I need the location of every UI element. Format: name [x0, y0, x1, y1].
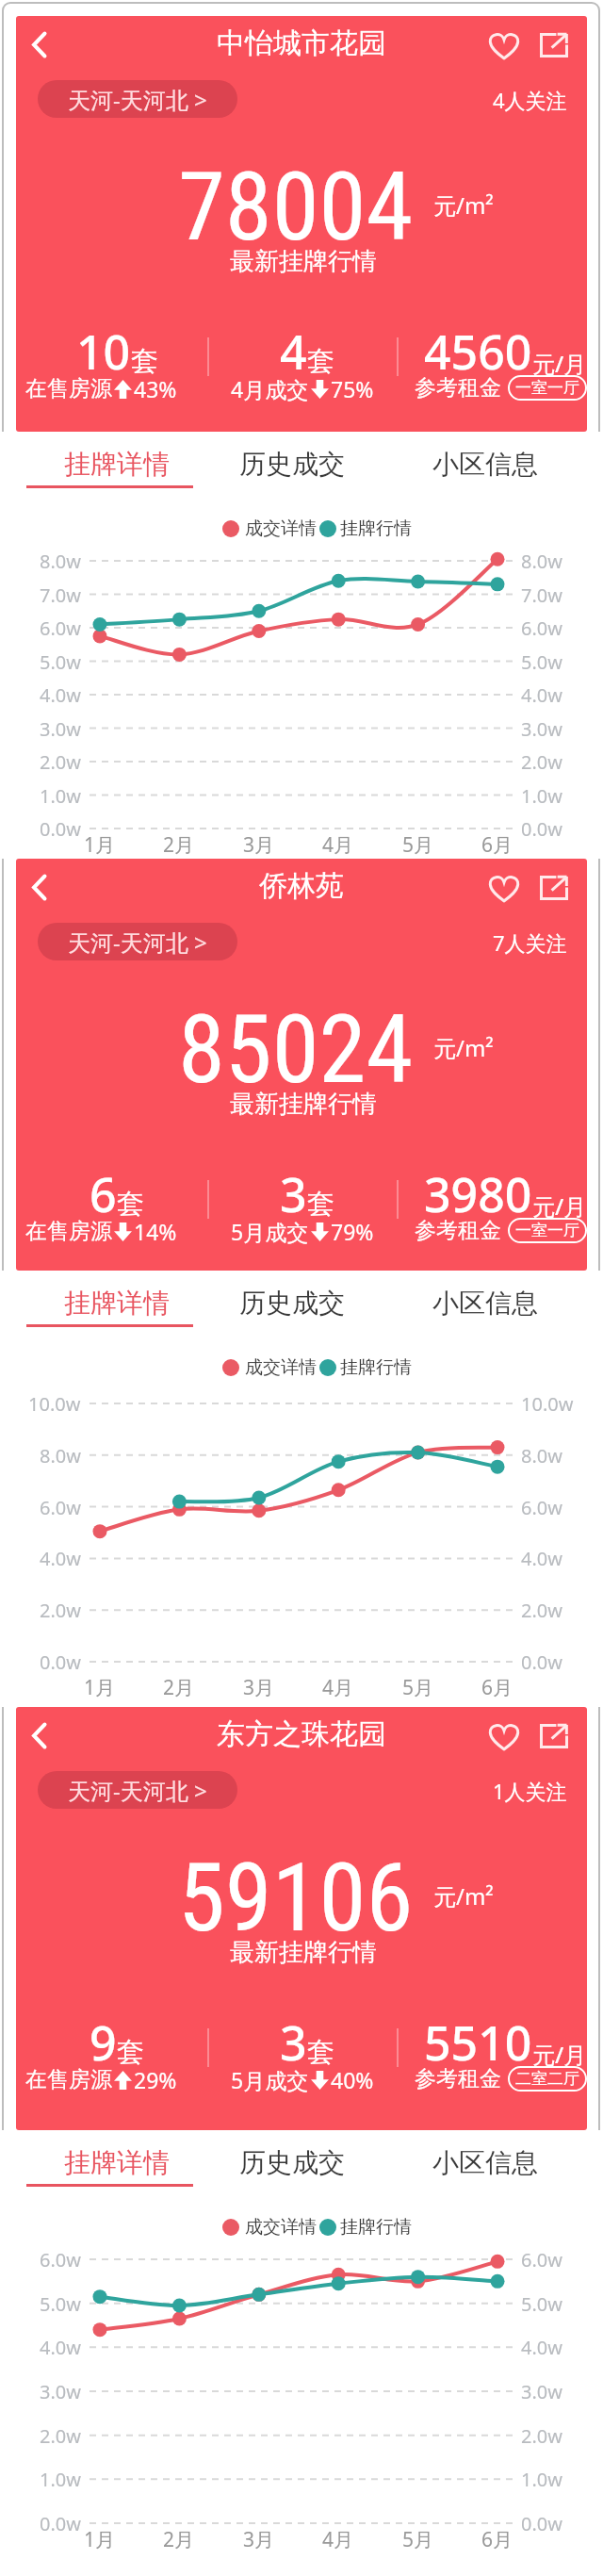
button[interactable]: 挂牌详情	[32, 1286, 202, 1320]
staticText: 2月	[163, 831, 195, 858]
staticText: 3月	[243, 2526, 275, 2552]
button[interactable]	[18, 1715, 59, 1756]
staticText: 4	[280, 320, 307, 384]
staticText: 1.0w	[521, 783, 562, 809]
staticText: 历史成交	[239, 2146, 345, 2179]
button[interactable]: 天河-天河北 >	[38, 80, 237, 118]
staticText: 4.0w	[40, 1546, 81, 1571]
staticText: 7.0w	[521, 582, 562, 608]
staticText: 套	[131, 344, 158, 379]
button[interactable]: 天河-天河北 >	[38, 1771, 237, 1809]
staticText: 7.0w	[40, 582, 81, 608]
staticText: 2月	[163, 2526, 195, 2552]
staticText: 3	[280, 1162, 307, 1226]
staticText: 7人关注	[493, 928, 567, 957]
staticText: 6	[90, 1162, 117, 1226]
staticText: 3.0w	[40, 2379, 81, 2404]
button[interactable]	[483, 25, 525, 66]
staticText: 6.0w	[521, 615, 562, 641]
staticText: 5510	[424, 2010, 532, 2075]
staticText: 小区信息	[432, 1287, 538, 1320]
staticText: 最新挂牌行情	[230, 1089, 377, 1120]
staticText: 元/m²	[433, 1880, 494, 1911]
staticText: 1月	[84, 1674, 116, 1700]
staticText: 套	[117, 2035, 144, 2070]
staticText: 一室一厅	[515, 378, 579, 398]
button[interactable]: 历史成交	[207, 2145, 377, 2179]
staticText: 1.0w	[40, 2467, 81, 2492]
staticText: 3月	[243, 1674, 275, 1700]
staticText: 29%	[134, 2065, 177, 2094]
staticText: 中怡城市花园	[217, 25, 386, 61]
button[interactable]	[18, 24, 59, 65]
staticText: 5月成交	[231, 2065, 309, 2094]
staticText: 0.0w	[521, 2511, 562, 2536]
staticText: 4560	[424, 320, 532, 384]
button[interactable]	[483, 1715, 525, 1757]
staticText: 成交详情	[245, 2216, 317, 2239]
staticText: 10	[76, 320, 131, 384]
staticText: 参考租金	[415, 374, 501, 402]
button[interactable]	[533, 1715, 575, 1757]
button[interactable]	[483, 867, 525, 909]
button[interactable]: 历史成交	[207, 1286, 377, 1320]
staticText: 3月	[243, 831, 275, 858]
staticText: 6月	[481, 2526, 513, 2552]
staticText: 历史成交	[239, 448, 345, 481]
staticText: 历史成交	[239, 1287, 345, 1320]
staticText: 0.0w	[40, 816, 81, 842]
staticText: 4月	[322, 831, 354, 858]
staticText: 5.0w	[40, 649, 81, 675]
staticText: 4人关注	[493, 86, 567, 114]
staticText: 4.0w	[521, 682, 562, 708]
staticText: 二室二厅	[515, 2069, 579, 2089]
staticText: 3980	[424, 1162, 532, 1226]
staticText: 1月	[84, 831, 116, 858]
staticText: 8.0w	[521, 549, 562, 574]
staticText: 小区信息	[432, 2146, 538, 2179]
staticText: 6.0w	[40, 2247, 81, 2272]
button[interactable]: 小区信息	[400, 447, 570, 481]
staticText: 4月成交	[231, 374, 309, 403]
staticText: 4.0w	[40, 2335, 81, 2360]
button[interactable]	[533, 867, 575, 909]
button[interactable]: 天河-天河北 >	[38, 923, 237, 960]
staticText: 天河-天河北 >	[68, 1775, 207, 1806]
staticText: 14%	[134, 1217, 177, 1246]
staticText: 挂牌详情	[64, 2146, 170, 2179]
staticText: 3.0w	[40, 716, 81, 742]
staticText: 2.0w	[521, 1598, 562, 1623]
staticText: 8.0w	[40, 549, 81, 574]
staticText: 成交详情	[245, 1356, 317, 1379]
button[interactable]: 小区信息	[400, 2145, 570, 2179]
staticText: 1人关注	[493, 1777, 567, 1805]
staticText: 元/m²	[433, 189, 494, 221]
staticText: 5月	[402, 1674, 434, 1700]
staticText: 侨林苑	[259, 868, 344, 904]
button[interactable]	[18, 866, 59, 908]
staticText: 最新挂牌行情	[230, 246, 377, 277]
staticText: 最新挂牌行情	[230, 1937, 377, 1968]
staticText: 4.0w	[521, 2335, 562, 2360]
staticText: 挂牌详情	[64, 1287, 170, 1320]
staticText: 元/月	[532, 1190, 587, 1222]
button[interactable]	[533, 25, 575, 66]
staticText: 2月	[163, 1674, 195, 1700]
staticText: 1月	[84, 2526, 116, 2552]
staticText: 4月	[322, 2526, 354, 2552]
button[interactable]: 挂牌详情	[32, 2145, 202, 2179]
staticText: 59106	[178, 1842, 414, 1953]
button[interactable]: 小区信息	[400, 1286, 570, 1320]
button[interactable]: 挂牌详情	[32, 447, 202, 481]
staticText: 2.0w	[40, 2423, 81, 2449]
staticText: 挂牌行情	[340, 2216, 412, 2239]
staticText: 在售房源	[25, 375, 112, 402]
staticText: 挂牌行情	[340, 517, 412, 540]
staticText: 2.0w	[521, 2423, 562, 2449]
staticText: 5月成交	[231, 1217, 309, 1246]
staticText: 0.0w	[521, 1649, 562, 1675]
button[interactable]: 历史成交	[207, 447, 377, 481]
staticText: 在售房源	[25, 2066, 112, 2093]
staticText: 4.0w	[40, 682, 81, 708]
staticText: 79%	[331, 1217, 374, 1246]
